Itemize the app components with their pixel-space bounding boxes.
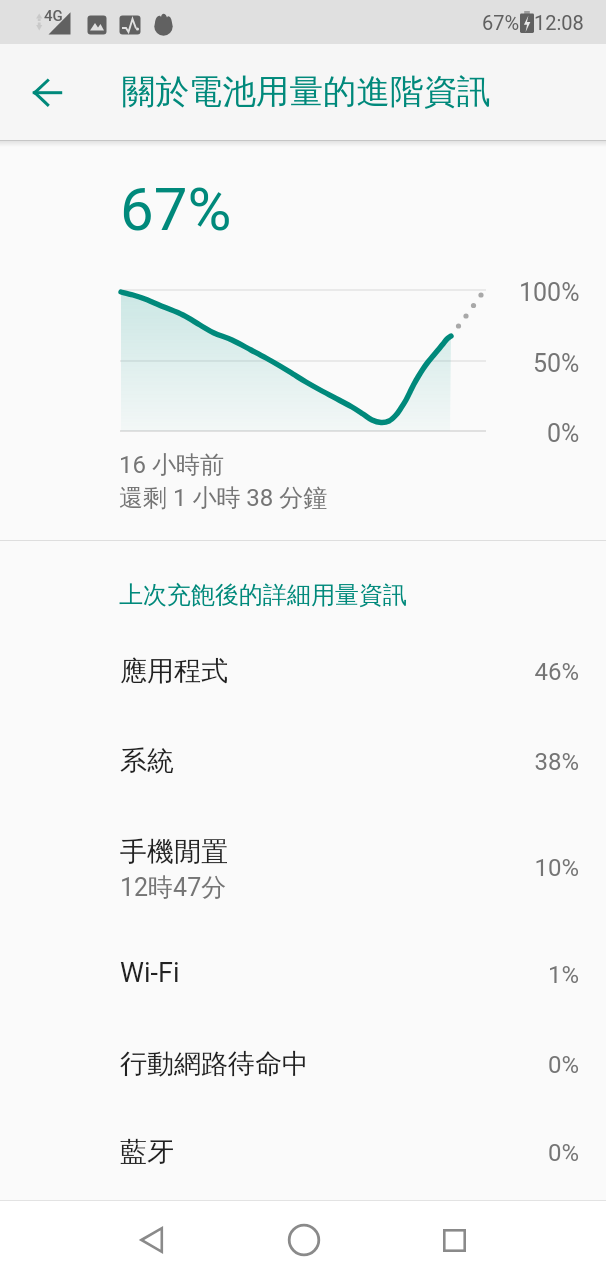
staticText: 67% [120, 174, 232, 244]
staticText: 50% [533, 349, 580, 378]
staticText: Wi-Fi [120, 957, 180, 989]
button[interactable]: Recents [415, 1200, 494, 1280]
button[interactable]: 應用程式 [0, 630, 606, 719]
button[interactable]: Wi-Fi [0, 933, 606, 1022]
button[interactable]: Back [112, 1200, 191, 1280]
staticText: 關於電池用量的進階資訊 [122, 71, 491, 113]
staticText: 藍牙 [120, 1135, 174, 1169]
button[interactable]: 手機閒置 [0, 811, 606, 931]
staticText: 應用程式 [120, 654, 228, 688]
staticText: 38% [438, 748, 579, 776]
staticText: 手機閒置 [120, 835, 228, 869]
button[interactable]: 系統 [0, 720, 606, 809]
staticText: 0% [438, 1051, 579, 1079]
button[interactable]: 藍牙 [0, 1111, 606, 1200]
staticText: 0% [438, 1139, 579, 1167]
button[interactable]: 行動網路待命中 [0, 1023, 606, 1112]
staticText: 上次充飽後的詳細用量資訊 [119, 580, 407, 610]
staticText: 16 小時前 [119, 450, 224, 480]
staticText: 12時47分 [120, 872, 227, 903]
staticText: 12:08 [534, 11, 584, 34]
staticText: 100% [519, 278, 580, 307]
staticText: 0% [547, 419, 580, 448]
staticText: 行動網路待命中 [120, 1047, 309, 1081]
staticText: 10% [438, 854, 579, 882]
staticText: 還剩 1 小時 38 分鐘 [119, 483, 328, 513]
button[interactable]: Home [264, 1200, 343, 1280]
staticText: 1% [438, 961, 579, 989]
staticText: 4G [44, 7, 63, 25]
staticText: 系統 [120, 744, 174, 778]
button[interactable]: Back [23, 69, 71, 117]
staticText: 46% [438, 658, 579, 686]
staticText: 67% [482, 11, 520, 34]
